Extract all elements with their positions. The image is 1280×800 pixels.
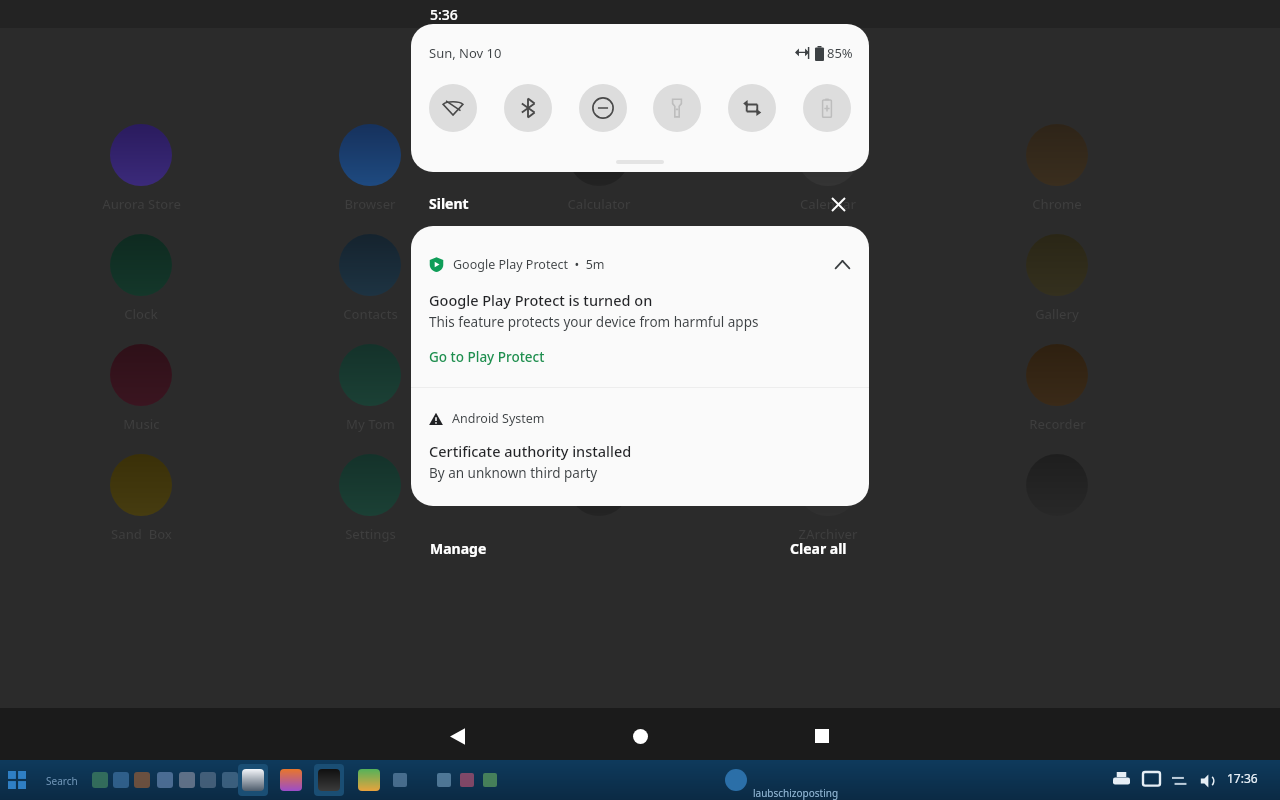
staticText: Sand Box [111,525,172,543]
button[interactable]: Contacts [339,234,401,296]
staticText: Calculator [567,195,631,213]
staticText: Silent [429,194,469,213]
staticText: Search [46,774,78,788]
staticText: Manage [430,539,487,558]
staticText: 85% [827,44,853,62]
button[interactable]: Calendar [797,124,859,186]
staticText: Chrome [1032,195,1082,213]
button[interactable]: Weather [1026,454,1088,516]
staticText: Aurora Store [102,195,181,213]
button[interactable]: Music [110,344,172,406]
button[interactable]: Flashlight [653,84,701,132]
staticText: Recorder [1029,415,1086,433]
button[interactable]: Window [352,762,386,798]
staticText: Music [123,415,160,433]
button[interactable]: Aurora Store [110,124,172,186]
button[interactable]: Sand Box [110,454,172,516]
button[interactable]: Clear all [784,533,853,564]
button[interactable]: Start [8,771,26,789]
button[interactable]: Google Play Protect • 5m [411,226,869,387]
staticText: ZArchiver [798,525,858,543]
button[interactable]: My Tom [339,344,401,406]
button[interactable]: Volume [1199,772,1217,790]
button[interactable]: Taskbar app [179,772,195,788]
button[interactable]: Window [236,762,270,798]
button[interactable]: Clock [110,234,172,296]
staticText: Calendar [800,195,856,213]
button[interactable]: Network disconnected [1172,772,1189,789]
button[interactable]: Android System [411,388,869,506]
staticText: Android System [452,410,545,427]
staticText: Browser [344,195,396,213]
button[interactable]: Clear silent notifications [823,189,853,219]
button[interactable]: Printer [1113,772,1130,789]
staticText: Clear all [790,539,847,558]
button[interactable]: Calculator [568,124,630,186]
staticText: Google Play Protect • 5m [453,256,605,273]
staticText: Sun, Nov 10 [429,44,502,62]
button[interactable]: Collapse notification [829,251,855,277]
button[interactable]: Clock [1227,770,1258,786]
button[interactable]: Window [312,762,346,798]
staticText: Contacts [343,305,398,323]
staticText: Google Play Protect is turned on [429,290,653,310]
button[interactable]: Taskbar app [157,772,173,788]
button[interactable]: Manage [424,533,493,564]
staticText: Gallery [1035,305,1079,323]
staticText: My Tom [346,415,395,433]
button[interactable]: Do not disturb [579,84,627,132]
button[interactable]: Recorder [1026,344,1088,406]
button[interactable]: Taskbar app [134,772,150,788]
staticText: This feature protects your device from h… [429,313,759,331]
button[interactable]: Bluetooth [504,84,552,132]
staticText: 17:36 [1227,770,1258,786]
staticText: By an unknown third party [429,464,598,482]
button[interactable]: Calculator2 [568,234,630,296]
button[interactable]: Files [797,234,859,296]
staticText: Go to Play Protect [429,348,545,366]
button[interactable]: Taskbar app [200,772,216,788]
button[interactable]: Settings [339,454,401,516]
button[interactable]: Store [568,454,630,516]
button[interactable]: Browser [339,124,401,186]
button[interactable]: Display [1143,772,1160,789]
button[interactable]: ZArchiver [797,454,859,516]
button[interactable]: Taskbar app [92,772,108,788]
button[interactable]: Taskbar app [222,772,238,788]
button[interactable]: Taskbar app [113,772,129,788]
button[interactable]: Back [443,722,471,750]
staticText: Clock [124,305,158,323]
button[interactable]: Window [274,762,308,798]
staticText: Certificate authority installed [429,441,632,461]
button[interactable]: Wi-Fi [429,84,477,132]
staticText: 5:36 [430,5,458,24]
button[interactable]: Recent apps [808,722,836,750]
button[interactable]: Go to Play Protect [429,348,545,366]
staticText: Settings [345,525,396,543]
button[interactable]: Chrome [1026,124,1088,186]
staticText: laubschizoposting [753,786,839,800]
button[interactable]: Gallery [1026,234,1088,296]
button[interactable]: Home [626,722,654,750]
button[interactable]: Battery saver [803,84,851,132]
button[interactable]: Auto-rotate [728,84,776,132]
